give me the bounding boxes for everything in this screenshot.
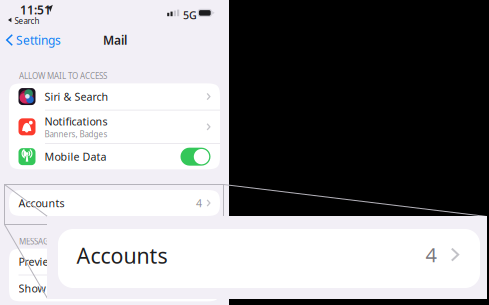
staticText: Mail: [103, 32, 127, 48]
staticText: ALLOW MAIL TO ACCESS: [19, 70, 107, 81]
staticText: Preview: [18, 254, 56, 269]
staticText: Banners, Badges: [44, 129, 107, 139]
button[interactable]: Accounts: [9, 190, 220, 216]
button[interactable]: Notifications: [9, 110, 220, 143]
button[interactable]: Siri & Search: [9, 83, 220, 110]
staticText: Show To/Cc Labels: [18, 281, 111, 295]
staticText: 4: [425, 241, 436, 268]
staticText: Settings: [16, 32, 61, 48]
button[interactable]: Show To/Cc Labels: [9, 275, 220, 301]
button[interactable]: Preview: [9, 249, 220, 275]
staticText: Siri & Search: [44, 89, 108, 104]
staticText: Notifications: [44, 114, 107, 128]
staticText: 11:51: [20, 2, 51, 18]
staticText: Accounts: [18, 196, 64, 210]
button[interactable]: Accounts: [58, 229, 480, 288]
staticText: 4: [196, 196, 202, 210]
staticText: 2 Lines: [166, 254, 202, 269]
staticText: Search: [15, 16, 40, 26]
button[interactable]: Settings: [0, 28, 67, 52]
staticText: Mobile Data: [44, 150, 106, 164]
button[interactable]: Mobile Data: [9, 144, 220, 169]
staticText: MESSAGE LIST: [19, 236, 70, 247]
staticText: Accounts: [76, 241, 167, 270]
staticText: 5G: [183, 8, 197, 22]
